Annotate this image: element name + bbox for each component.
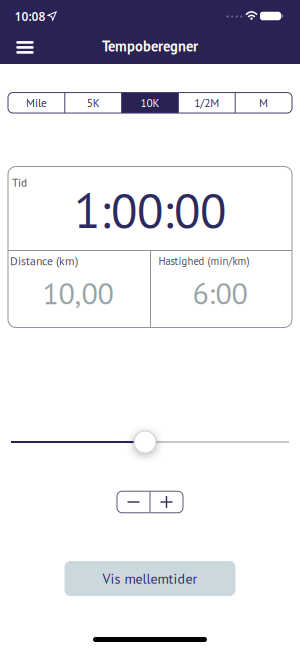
staticText: Hastighed (min/km) bbox=[158, 254, 249, 268]
staticText: 5K bbox=[87, 95, 100, 110]
button[interactable]: Slider bbox=[134, 431, 156, 453]
button[interactable]: 1/2M bbox=[178, 92, 235, 113]
button[interactable]: Increment bbox=[150, 491, 183, 513]
staticText: 10K bbox=[140, 95, 159, 110]
staticText: Distance (km) bbox=[10, 253, 78, 269]
button[interactable]: 5K bbox=[65, 92, 122, 113]
button[interactable]: 10K bbox=[122, 92, 178, 113]
staticText: Tid bbox=[12, 175, 27, 190]
staticText: 10:08 bbox=[14, 8, 45, 24]
staticText: Vis mellemtider bbox=[102, 569, 197, 587]
staticText: Mile bbox=[26, 95, 47, 110]
button[interactable]: Menu bbox=[9, 32, 41, 62]
button[interactable]: Mile bbox=[8, 92, 65, 113]
staticText: M bbox=[259, 95, 268, 110]
button[interactable]: Vis mellemtider bbox=[64, 561, 235, 596]
staticText: 10,00 bbox=[42, 274, 113, 312]
staticText: 1:00:00 bbox=[74, 179, 226, 241]
button[interactable]: M bbox=[235, 92, 292, 113]
staticText: 1/2M bbox=[194, 95, 219, 110]
staticText: Tempoberegner bbox=[102, 37, 198, 55]
button[interactable]: Decrement bbox=[117, 491, 150, 513]
staticText: 6:00 bbox=[192, 274, 247, 312]
